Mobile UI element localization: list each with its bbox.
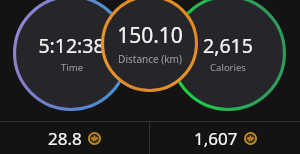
staticText: 1,607: [194, 127, 238, 150]
button[interactable]: Steps 1,607: [150, 122, 300, 154]
button[interactable]: Time 5 hours 12 minutes 38 seconds: [13, 0, 129, 111]
staticText: Distance (km): [118, 52, 182, 66]
staticText: Calories: [210, 61, 246, 74]
staticText: 28.8: [48, 127, 82, 150]
staticText: 5:12:38: [38, 32, 105, 59]
button[interactable]: Calories 2,615: [170, 0, 286, 111]
button[interactable]: Average pace 28.8: [0, 122, 149, 154]
button[interactable]: Distance 150.10 kilometres: [101, 0, 198, 92]
staticText: 2,615: [203, 32, 253, 59]
staticText: Time: [61, 61, 83, 74]
staticText: 150.10: [117, 21, 183, 50]
